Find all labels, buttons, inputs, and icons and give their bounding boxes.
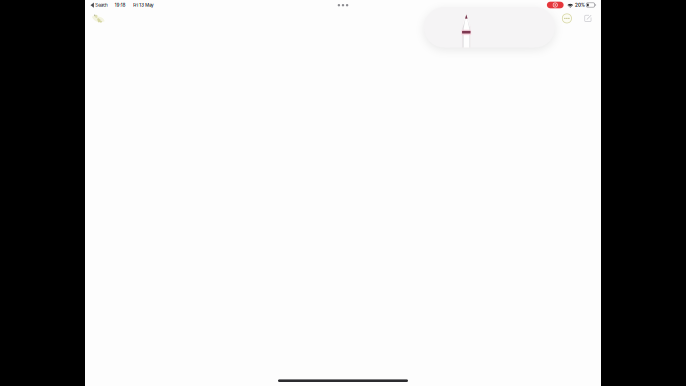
staticText: 19:18 xyxy=(115,2,126,8)
button[interactable]: Compose xyxy=(579,10,596,27)
button[interactable]: Multitasking controls xyxy=(329,1,357,9)
staticText: 20% xyxy=(575,2,585,8)
button[interactable]: Pen tool xyxy=(424,11,470,47)
staticText: Fri 13 May xyxy=(133,2,153,8)
button[interactable]: Search xyxy=(90,2,107,8)
staticText: Search xyxy=(95,2,107,8)
button[interactable]: More xyxy=(558,10,575,27)
button[interactable]: Stop screen recording xyxy=(547,2,564,8)
